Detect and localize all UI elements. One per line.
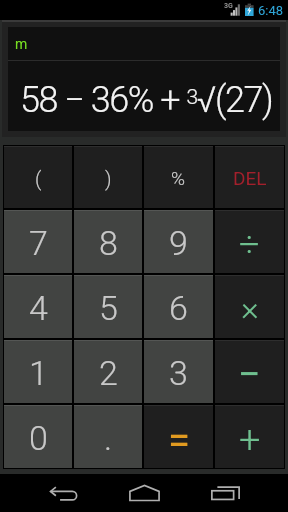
staticText: 3G — [224, 2, 233, 10]
button[interactable]: ( — [4, 146, 72, 208]
staticText: × — [241, 288, 259, 328]
staticText: 6 — [169, 288, 188, 328]
staticText: ÷ — [239, 224, 260, 266]
button[interactable]: . — [74, 405, 142, 468]
staticText: 58 − 36% + 3√(27) — [20, 79, 273, 121]
button[interactable]: 5 — [74, 275, 142, 338]
staticText: % — [171, 167, 186, 189]
button[interactable]: Back — [23, 474, 104, 512]
staticText: 4 — [29, 288, 48, 328]
button[interactable]: 3 — [144, 340, 213, 403]
staticText: 6:48 — [258, 3, 284, 18]
staticText: ) — [105, 167, 112, 190]
staticText: 0 — [29, 418, 48, 458]
button[interactable]: − — [215, 340, 284, 403]
button[interactable]: × — [215, 275, 284, 338]
staticText: 7 — [29, 223, 48, 263]
button[interactable]: 6 — [144, 275, 213, 338]
button[interactable]: 0 — [4, 405, 72, 468]
button[interactable]: % — [144, 146, 213, 208]
button[interactable]: Home — [104, 474, 185, 512]
staticText: DEL — [233, 167, 267, 189]
staticText: m — [15, 36, 28, 52]
button[interactable]: Recent apps — [185, 474, 266, 512]
button[interactable]: ÷ — [215, 210, 284, 273]
staticText: 8 — [99, 223, 118, 263]
button[interactable]: 9 — [144, 210, 213, 273]
staticText: . — [104, 418, 113, 458]
button[interactable]: DEL — [215, 146, 284, 208]
staticText: 5 — [99, 288, 118, 328]
staticText: 9 — [169, 223, 188, 263]
staticText: 3 — [169, 353, 188, 393]
button[interactable]: 7 — [4, 210, 72, 273]
staticText: = — [168, 417, 190, 464]
staticText: 1 — [29, 353, 48, 393]
staticText: + — [239, 418, 261, 463]
button[interactable]: = — [144, 405, 213, 468]
staticText: − — [238, 351, 261, 398]
button[interactable]: + — [215, 405, 284, 468]
staticText: 2 — [99, 353, 118, 393]
button[interactable]: 8 — [74, 210, 142, 273]
staticText: ( — [35, 167, 42, 190]
button[interactable]: 4 — [4, 275, 72, 338]
button[interactable]: ) — [74, 146, 142, 208]
button[interactable]: 1 — [4, 340, 72, 403]
button[interactable]: 2 — [74, 340, 142, 403]
